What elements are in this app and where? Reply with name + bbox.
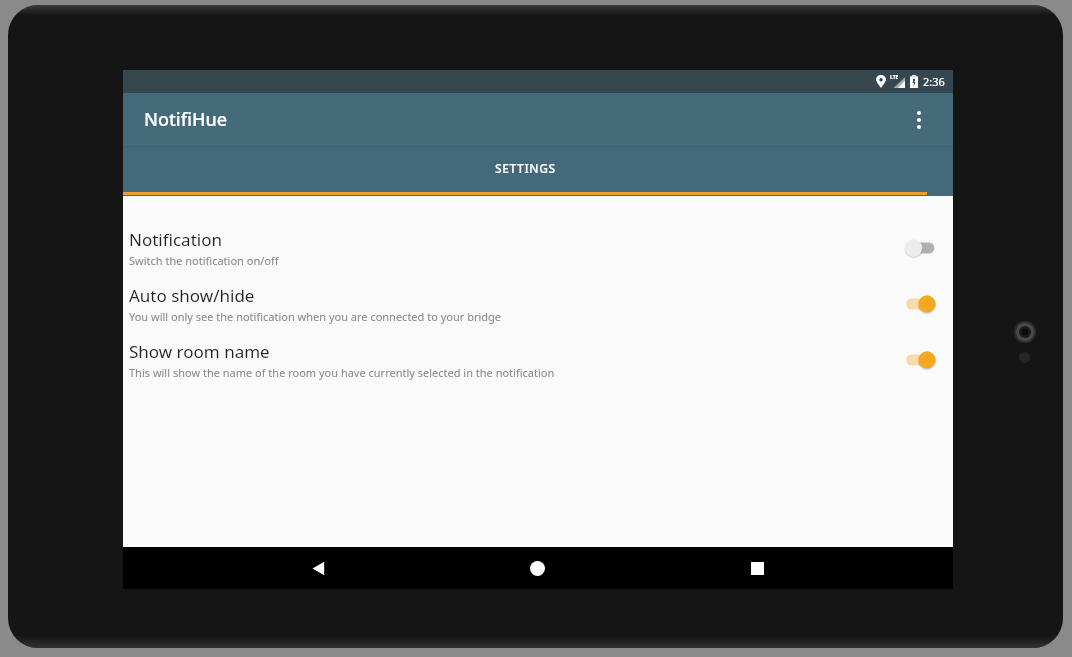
staticText: You will only see the notification when … <box>129 309 502 324</box>
staticText: This will show the name of the room you … <box>129 365 555 380</box>
button[interactable]: SETTINGS <box>110 146 940 196</box>
button[interactable]: Recent apps <box>733 547 781 589</box>
button[interactable]: Notification <box>123 220 953 276</box>
staticText: LTE <box>890 74 899 81</box>
button[interactable]: More options <box>899 100 939 140</box>
staticText: Switch the notification on/off <box>129 253 279 268</box>
button[interactable]: On <box>903 292 939 316</box>
staticText: NotifiHue <box>144 107 228 132</box>
button[interactable]: Show room name <box>123 332 953 388</box>
staticText: Show room name <box>129 340 270 363</box>
staticText: Auto show/hide <box>129 284 255 307</box>
button[interactable]: Auto show/hide <box>123 276 953 332</box>
staticText: Notification <box>129 228 222 251</box>
button[interactable]: On <box>903 348 939 372</box>
staticText: SETTINGS <box>495 160 556 176</box>
button[interactable]: Home <box>513 547 561 589</box>
button[interactable]: Back <box>294 547 342 589</box>
button[interactable]: Off <box>903 236 939 260</box>
staticText: 2:36 <box>923 74 945 89</box>
